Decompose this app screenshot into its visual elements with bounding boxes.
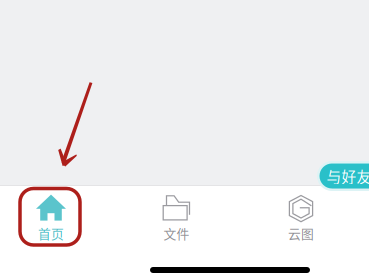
staticText: 首页 (38, 224, 64, 242)
button[interactable]: 首页 (0, 195, 102, 245)
staticText: 与好友分享 (326, 165, 369, 187)
staticText: 文件 (163, 224, 189, 242)
button[interactable]: 与好友分享 (317, 161, 369, 191)
staticText: 云图 (288, 224, 314, 242)
button[interactable]: 云图 (251, 195, 351, 245)
button[interactable]: 文件 (102, 195, 251, 245)
